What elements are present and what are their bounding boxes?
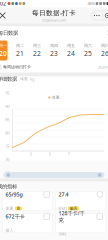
- button[interactable]: 周四: [49, 40, 58, 60]
- staticText: 21: [16, 49, 24, 58]
- staticText: 周二: [16, 43, 24, 48]
- button[interactable]: 周三: [32, 40, 41, 60]
- staticText: 26: [101, 49, 108, 58]
- staticText: 周三: [33, 43, 41, 48]
- button[interactable]: Close: [0, 7, 9, 23]
- button[interactable]: 128千卡/千克: [55, 213, 105, 232]
- staticText: 46%: [87, 1, 94, 6]
- button[interactable]: 27.4: [55, 191, 105, 210]
- staticText: 5: [49, 151, 51, 157]
- button[interactable]: 周日: [100, 40, 108, 60]
- staticText: 80: [5, 130, 9, 136]
- staticText: 2020-04: [98, 64, 108, 70]
- staticText: 体重: [52, 95, 60, 100]
- button[interactable]: 详细数据: [0, 72, 108, 86]
- staticText: 23: [50, 49, 58, 58]
- staticText: 摄入: [5, 228, 13, 233]
- staticText: 0:02: [0, 0, 6, 7]
- staticText: 90: [5, 104, 9, 109]
- staticText: 我的指标: [0, 183, 17, 190]
- staticText: 65/95g: [5, 191, 22, 198]
- staticText: 详细数据: [0, 76, 17, 82]
- staticText: 70: [5, 157, 9, 162]
- staticText: 周日: [101, 43, 108, 48]
- staticText: 7: [68, 151, 70, 157]
- button[interactable]: 周六: [83, 40, 92, 60]
- staticText: 27.4: [58, 191, 68, 198]
- staticText: 65: [5, 170, 9, 176]
- staticText: 良: [16, 206, 20, 211]
- staticText: 20: [0, 49, 7, 58]
- staticText: 周一: [0, 43, 7, 48]
- staticText: 周四: [50, 43, 58, 48]
- staticText: 24: [67, 49, 75, 58]
- staticText: 75: [5, 144, 9, 149]
- button[interactable]: 65/95g: [2, 191, 52, 210]
- staticText: 周五: [67, 43, 75, 48]
- staticText: 22: [33, 49, 41, 58]
- staticText: t.lepeixun.com: [41, 17, 66, 23]
- staticText: 95: [5, 90, 9, 96]
- staticText: 每日数据-打卡: [32, 8, 76, 17]
- button[interactable]: 周五: [66, 40, 75, 60]
- staticText: 3: [29, 151, 31, 157]
- staticText: 每日数据: [0, 30, 18, 36]
- staticText: 85: [5, 117, 9, 122]
- staticText: 25: [84, 49, 92, 58]
- staticText: 周六: [84, 43, 92, 48]
- staticText: 128千卡/千克: [58, 210, 84, 223]
- staticText: 672千卡: [5, 213, 24, 220]
- staticText: 偏高: [69, 206, 77, 211]
- staticText: 体重: [5, 206, 13, 211]
- button[interactable]: 周一: [0, 40, 7, 60]
- button[interactable]: 每日数据: [0, 26, 108, 39]
- staticText: BMI: [58, 206, 66, 211]
- staticText: kg: [30, 76, 34, 82]
- button[interactable]: 周二: [15, 40, 24, 60]
- staticText: 每周运动日打卡: [3, 64, 31, 69]
- button[interactable]: More options: [91, 11, 108, 20]
- staticText: 体重: [20, 76, 28, 81]
- staticText: 消耗: [58, 231, 66, 236]
- button[interactable]: 672千卡: [2, 213, 52, 232]
